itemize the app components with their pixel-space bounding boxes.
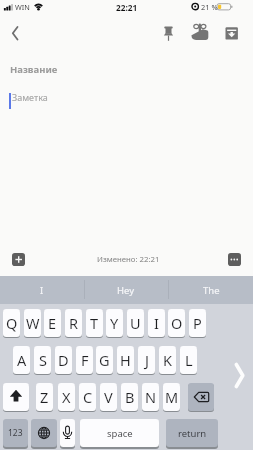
button[interactable]: K: [159, 346, 176, 374]
staticText: I: [40, 284, 44, 297]
staticText: D: [58, 350, 69, 370]
button[interactable]: V: [100, 383, 117, 411]
button[interactable]: Hey: [84, 276, 168, 304]
staticText: W: [26, 313, 40, 333]
staticText: X: [62, 387, 71, 407]
staticText: 21 %: [201, 2, 218, 12]
button[interactable]: E: [44, 309, 61, 337]
button[interactable]: [31, 419, 57, 447]
button[interactable]: D: [55, 346, 72, 374]
staticText: I: [154, 313, 159, 333]
button[interactable]: 123: [3, 419, 28, 447]
staticText: H: [120, 350, 131, 370]
button[interactable]: [6, 24, 26, 44]
button[interactable]: J: [138, 346, 155, 374]
staticText: space: [107, 427, 133, 440]
button[interactable]: space: [80, 419, 159, 447]
staticText: B: [125, 387, 135, 407]
staticText: S: [39, 350, 47, 370]
button[interactable]: W: [24, 309, 41, 337]
staticText: WIN: [15, 2, 30, 12]
button[interactable]: M: [163, 383, 180, 411]
button[interactable]: L: [180, 346, 197, 374]
staticText: Изменено: 22:21: [97, 254, 160, 265]
staticText: K: [163, 350, 172, 370]
button[interactable]: N: [142, 383, 159, 411]
staticText: Hey: [117, 284, 135, 297]
staticText: P: [193, 313, 202, 333]
staticText: J: [145, 350, 149, 370]
button[interactable]: C: [79, 383, 96, 411]
staticText: E: [48, 313, 57, 333]
button[interactable]: I: [0, 276, 84, 304]
button[interactable]: [228, 253, 241, 266]
staticText: N: [145, 387, 157, 407]
staticText: C: [83, 387, 93, 407]
button[interactable]: B: [121, 383, 138, 411]
button[interactable]: [188, 383, 214, 411]
staticText: Y: [110, 313, 119, 333]
staticText: U: [130, 313, 141, 333]
button[interactable]: Y: [106, 309, 123, 337]
staticText: A: [17, 350, 27, 370]
staticText: Z: [40, 387, 49, 407]
button[interactable]: [189, 22, 211, 45]
staticText: Заметка: [12, 91, 48, 103]
button[interactable]: The: [169, 276, 253, 304]
staticText: 22:21: [116, 2, 138, 13]
button[interactable]: O: [168, 309, 185, 337]
staticText: G: [99, 350, 110, 370]
button[interactable]: P: [189, 309, 206, 337]
button[interactable]: [60, 419, 75, 447]
button[interactable]: R: [65, 309, 82, 337]
button[interactable]: U: [127, 309, 144, 337]
button[interactable]: S: [34, 346, 51, 374]
button[interactable]: F: [76, 346, 93, 374]
staticText: Q: [6, 313, 18, 333]
button[interactable]: H: [117, 346, 134, 374]
button[interactable]: X: [58, 383, 75, 411]
staticText: M: [165, 387, 179, 407]
staticText: L: [185, 350, 193, 370]
staticText: O: [171, 313, 183, 333]
button[interactable]: Z: [36, 383, 53, 411]
button[interactable]: [12, 253, 25, 266]
staticText: T: [90, 313, 99, 333]
button[interactable]: G: [96, 346, 113, 374]
staticText: F: [81, 350, 89, 370]
staticText: The: [203, 284, 220, 297]
staticText: Название: [10, 63, 58, 76]
button[interactable]: return: [166, 419, 218, 447]
button[interactable]: [3, 383, 29, 411]
button[interactable]: [221, 23, 242, 44]
button[interactable]: T: [86, 309, 103, 337]
button[interactable]: I: [148, 309, 165, 337]
staticText: return: [178, 427, 207, 440]
staticText: V: [104, 387, 113, 407]
staticText: 123: [8, 427, 23, 439]
button[interactable]: [158, 23, 179, 44]
button[interactable]: A: [13, 346, 30, 374]
button[interactable]: Q: [3, 309, 20, 337]
staticText: R: [69, 313, 79, 333]
